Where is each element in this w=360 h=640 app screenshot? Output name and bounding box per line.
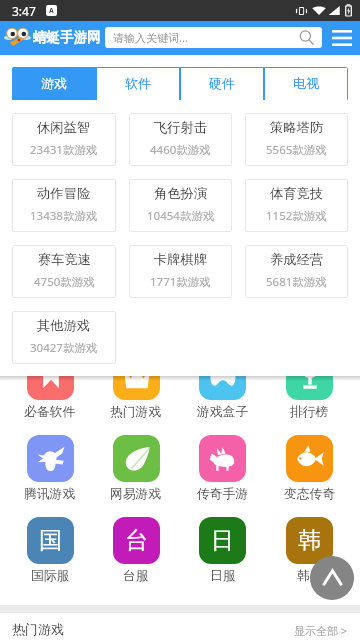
staticText: 韩服 — [297, 568, 323, 584]
button[interactable]: 变态传奇 — [266, 435, 353, 517]
staticText: 国 — [39, 526, 62, 555]
staticText: 动作冒险 — [37, 185, 91, 202]
staticText: 5681款游戏 — [266, 274, 327, 290]
staticText: 网易游戏 — [110, 486, 162, 502]
staticText: 电视 — [293, 75, 319, 91]
button[interactable]: 飞行射击 — [129, 113, 232, 166]
button[interactable]: 游戏 — [12, 67, 96, 101]
staticText: 韩 — [298, 526, 321, 555]
staticText: 台 — [125, 526, 148, 555]
button[interactable]: 热门游戏 — [93, 353, 179, 435]
button[interactable]: 体育竞技 — [245, 179, 348, 232]
staticText: 5565款游戏 — [266, 142, 327, 158]
staticText: 腾讯游戏 — [24, 486, 76, 502]
button[interactable]: 养成经营 — [245, 245, 348, 298]
button[interactable]: 排行榜 — [266, 353, 353, 435]
staticText: 10454款游戏 — [147, 208, 215, 224]
button[interactable]: 请输入关键词... — [105, 27, 322, 48]
button[interactable]: 硬件 — [180, 67, 264, 101]
staticText: 13438款游戏 — [30, 208, 98, 224]
staticText: 日服 — [210, 568, 236, 584]
button[interactable]: 必备软件 — [7, 353, 93, 435]
staticText: 赛车竞速 — [38, 251, 92, 268]
button[interactable]: 动作冒险 — [12, 179, 116, 232]
staticText: 其他游戏 — [37, 317, 91, 334]
button[interactable]: 韩 — [266, 517, 353, 589]
staticText: 1152款游戏 — [266, 208, 327, 224]
button[interactable]: 策略塔防 — [245, 113, 348, 166]
staticText: 23431款游戏 — [30, 142, 98, 158]
staticText: 策略塔防 — [270, 119, 324, 136]
staticText: 30427款游戏 — [30, 340, 98, 356]
staticText: 必备软件 — [24, 404, 76, 420]
staticText: 排行榜 — [290, 404, 329, 420]
staticText: 4750款游戏 — [34, 274, 95, 290]
button[interactable]: Menu — [328, 25, 356, 51]
button[interactable]: 休闲益智 — [12, 113, 116, 166]
staticText: 养成经营 — [270, 251, 324, 268]
staticText: A — [49, 6, 54, 16]
button[interactable]: 角色扮演 — [129, 179, 232, 232]
button[interactable]: 其他游戏 — [12, 311, 116, 364]
staticText: 台服 — [123, 568, 149, 584]
staticText: 角色扮演 — [154, 185, 208, 202]
staticText: 卡牌棋牌 — [154, 251, 208, 268]
staticText: 传奇手游 — [197, 486, 249, 502]
button[interactable]: 电视 — [264, 67, 348, 101]
button[interactable]: 日 — [179, 517, 266, 589]
button[interactable]: 网易游戏 — [93, 435, 179, 517]
staticText: 显示全部 > — [294, 623, 348, 638]
staticText: 热门游戏 — [12, 621, 64, 637]
staticText: 游戏 — [41, 75, 67, 91]
staticText: 软件 — [125, 75, 151, 91]
button[interactable]: 赛车竞速 — [12, 245, 116, 298]
staticText: 休闲益智 — [37, 119, 91, 136]
staticText: 热门游戏 — [110, 404, 162, 420]
button[interactable]: 台 — [93, 517, 179, 589]
staticText: 3:47 — [12, 3, 36, 19]
button[interactable]: 传奇手游 — [179, 435, 266, 517]
staticText: 游戏盒子 — [197, 404, 249, 420]
staticText: 蜻蜓手游网 — [33, 29, 101, 46]
button[interactable]: 腾讯游戏 — [7, 435, 93, 517]
staticText: 变态传奇 — [284, 486, 336, 502]
button[interactable]: 游戏盒子 — [179, 353, 266, 435]
staticText: 国际服 — [31, 568, 70, 584]
staticText: 硬件 — [209, 75, 235, 91]
staticText: 请输入关键词... — [113, 30, 188, 45]
button[interactable]: 显示全部 > — [294, 621, 348, 638]
staticText: 4460款游戏 — [150, 142, 211, 158]
button[interactable]: 软件 — [96, 67, 180, 101]
staticText: 体育竞技 — [270, 185, 324, 202]
staticText: 1771款游戏 — [150, 274, 211, 290]
staticText: 飞行射击 — [154, 119, 208, 136]
button[interactable]: 卡牌棋牌 — [129, 245, 232, 298]
button[interactable]: 国 — [7, 517, 93, 589]
button[interactable]: Scroll to top — [310, 556, 354, 600]
staticText: 日 — [211, 526, 234, 555]
